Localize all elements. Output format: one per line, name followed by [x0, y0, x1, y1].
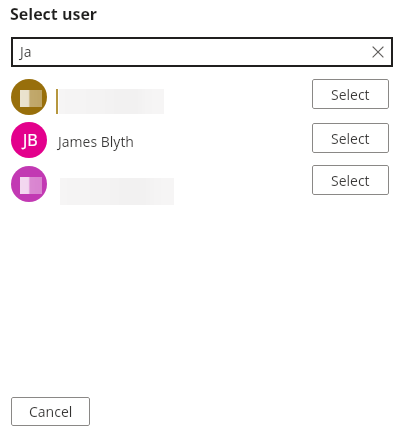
staticText: Cancel: [29, 402, 73, 421]
button[interactable]: Clear search: [366, 40, 390, 64]
staticText: Select: [331, 85, 370, 104]
button[interactable]: [0, 122, 300, 158]
staticText: Select user: [10, 3, 98, 25]
button[interactable]: Cancel: [11, 397, 90, 426]
button[interactable]: Select: [312, 165, 389, 195]
button[interactable]: Select: [312, 123, 389, 153]
button[interactable]: [0, 166, 300, 202]
staticText: Select: [331, 171, 370, 190]
staticText: JB: [23, 129, 38, 151]
button[interactable]: Select: [312, 79, 389, 109]
button[interactable]: [0, 79, 300, 115]
staticText: James Blyth: [58, 132, 134, 151]
staticText: Ja: [20, 42, 32, 61]
staticText: Select: [331, 129, 370, 148]
